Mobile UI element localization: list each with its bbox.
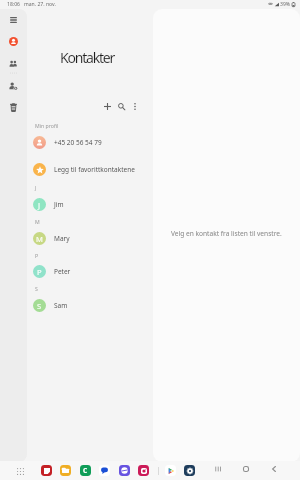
button[interactable]: Groups: [2, 54, 24, 72]
button[interactable]: M: [26, 228, 153, 248]
button[interactable]: +45 20 56 54 79: [26, 132, 153, 152]
button[interactable]: Instagram: [135, 462, 151, 478]
staticText: Kontakter: [60, 48, 115, 67]
staticText: S: [37, 301, 42, 311]
button[interactable]: Search: [114, 99, 129, 114]
staticText: Legg til favorittkontaktene: [54, 165, 135, 174]
button[interactable]: Legg til favorittkontaktene: [26, 159, 153, 179]
staticText: M: [36, 234, 43, 244]
button[interactable]: More options: [127, 99, 142, 114]
button[interactable]: P: [26, 261, 153, 281]
button[interactable]: My Files: [57, 462, 73, 478]
button[interactable]: Recent apps: [210, 461, 226, 477]
button[interactable]: Trash: [2, 98, 24, 116]
button[interactable]: Messages: [96, 462, 112, 478]
button[interactable]: Back: [266, 461, 282, 477]
button[interactable]: S: [26, 295, 153, 315]
button[interactable]: Internet: [116, 462, 132, 478]
staticText: P: [37, 267, 42, 277]
button[interactable]: All apps: [12, 463, 28, 479]
staticText: Velg en kontakt fra listen til venstre.: [171, 229, 282, 238]
staticText: 18:06: [7, 1, 21, 8]
staticText: S: [35, 285, 38, 292]
button[interactable]: Home: [238, 461, 254, 477]
staticText: Jim: [54, 200, 64, 209]
button[interactable]: Calculator: [77, 462, 93, 478]
staticText: J: [38, 200, 41, 210]
staticText: Mary: [54, 234, 70, 243]
button[interactable]: Add contact: [100, 99, 115, 114]
button[interactable]: J: [26, 194, 153, 214]
button[interactable]: Contacts: [2, 32, 24, 50]
staticText: J: [35, 184, 37, 191]
button[interactable]: Add contact: [2, 77, 24, 95]
staticText: P: [35, 252, 39, 259]
staticText: man. 27. nov.: [24, 1, 56, 8]
button[interactable]: Settings: [181, 462, 197, 478]
staticText: +45 20 56 54 79: [54, 138, 102, 147]
button[interactable]: Play Store: [162, 462, 178, 478]
staticText: Peter: [54, 267, 71, 276]
staticText: M: [35, 218, 40, 225]
button[interactable]: Samsung Notes: [38, 462, 54, 478]
staticText: C: [83, 466, 88, 475]
staticText: Sam: [54, 301, 68, 310]
button[interactable]: Navigation menu: [2, 11, 24, 29]
staticText: Min profil: [35, 122, 59, 129]
staticText: 39%: [280, 1, 291, 8]
